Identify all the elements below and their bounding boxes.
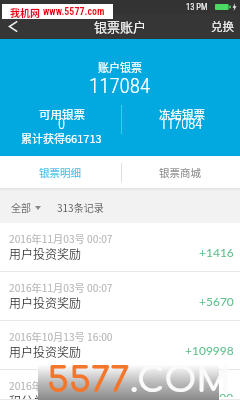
button[interactable]: 全部 <box>0 200 45 214</box>
staticText: 全部 <box>11 200 31 214</box>
staticText: 累计获得661713 <box>21 130 102 146</box>
staticText: 用户投资奖励 <box>9 294 82 311</box>
staticText: 可用银票 <box>39 106 85 123</box>
staticText: 账户银票 <box>98 59 142 75</box>
staticText: 313条记录 <box>57 200 104 214</box>
staticText: 117084 <box>89 74 151 99</box>
button[interactable]: 兑换 <box>201 14 240 39</box>
staticText: 2016年11月03号 00:07 <box>9 280 113 295</box>
staticText: 银票明细 <box>39 165 81 180</box>
staticText: 0 <box>58 116 66 133</box>
button[interactable]: 银票明细 <box>0 156 120 188</box>
staticText: 2016年11月03号 00:07 <box>9 231 113 246</box>
staticText: +5670 <box>199 294 234 308</box>
button[interactable]: 2016年11月03号 00:07 <box>0 272 240 321</box>
button[interactable]: 2016年10月13号 16:00 <box>0 321 240 370</box>
staticText: +1416 <box>199 245 234 259</box>
staticText: -10000 <box>194 390 234 397</box>
button[interactable]: Back <box>0 14 30 39</box>
staticText: +109998 <box>185 343 234 357</box>
staticText: 我机网 <box>10 5 40 19</box>
staticText: .COM <box>130 361 231 400</box>
staticText: 银票账户 <box>94 17 147 36</box>
staticText: www.5577.com <box>43 6 105 18</box>
staticText: 117084 <box>160 116 203 133</box>
staticText: 用户投资奖励 <box>9 245 82 262</box>
staticText: 银票商城 <box>159 165 201 180</box>
staticText: 冻结银票 <box>159 106 205 123</box>
button[interactable]: 2016年11月03号 00:07 <box>0 223 240 272</box>
staticText: 13 PM <box>186 2 208 12</box>
staticText: 2016年10月13号 16:00 <box>9 329 113 344</box>
staticText: 用户投资奖励 <box>9 343 82 360</box>
staticText: 2016年09月22号 10:48 <box>9 378 113 393</box>
button[interactable]: 2016年09月22号 10:48 <box>0 370 240 400</box>
staticText: 兑换 <box>211 18 234 35</box>
staticText: 积分兑换 <box>9 392 58 399</box>
staticText: 5577 <box>47 361 130 400</box>
button[interactable]: 银票商城 <box>120 156 240 188</box>
